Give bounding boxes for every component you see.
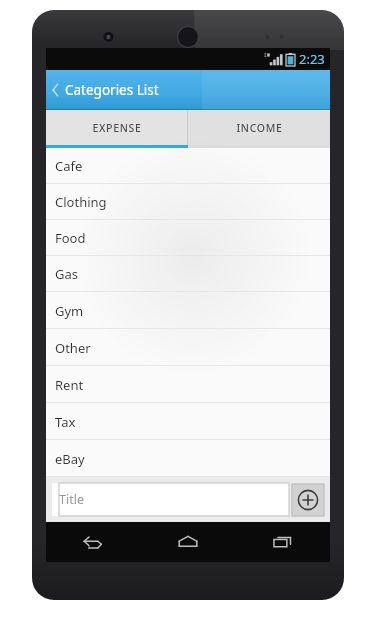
- staticText: Title: [59, 491, 84, 508]
- staticText: Categories List: [65, 81, 159, 99]
- staticText: Rent: [55, 376, 84, 394]
- staticText: EXPENSE: [92, 121, 142, 135]
- staticText: Gym: [55, 302, 84, 320]
- button[interactable]: eBay: [46, 440, 330, 477]
- staticText: Tax: [55, 413, 76, 431]
- staticText: Cafe: [55, 157, 83, 175]
- button[interactable]: Gas: [46, 256, 330, 292]
- button[interactable]: Add category: [292, 484, 324, 516]
- button[interactable]: Other: [46, 329, 330, 366]
- staticText: 2:23: [299, 50, 325, 68]
- button[interactable]: Food: [46, 220, 330, 256]
- other: Navigate up: [51, 82, 60, 98]
- staticText: Clothing: [55, 193, 107, 211]
- button[interactable]: INCOME: [188, 110, 330, 145]
- button[interactable]: Recent apps: [235, 522, 330, 562]
- button[interactable]: Home: [140, 522, 235, 562]
- staticText: INCOME: [236, 121, 283, 135]
- button[interactable]: Rent: [46, 366, 330, 403]
- button[interactable]: Gym: [46, 292, 330, 329]
- button[interactable]: Navigate up: [46, 70, 169, 110]
- staticText: Food: [55, 229, 86, 247]
- staticText: eBay: [55, 450, 85, 468]
- staticText: Gas: [55, 265, 78, 283]
- button[interactable]: Tax: [46, 403, 330, 440]
- button[interactable]: Clothing: [46, 184, 330, 220]
- button[interactable]: Title: [52, 483, 289, 516]
- button[interactable]: EXPENSE: [46, 110, 187, 145]
- button[interactable]: Cafe: [46, 148, 330, 184]
- button[interactable]: Back: [46, 522, 140, 562]
- staticText: Other: [55, 339, 91, 357]
